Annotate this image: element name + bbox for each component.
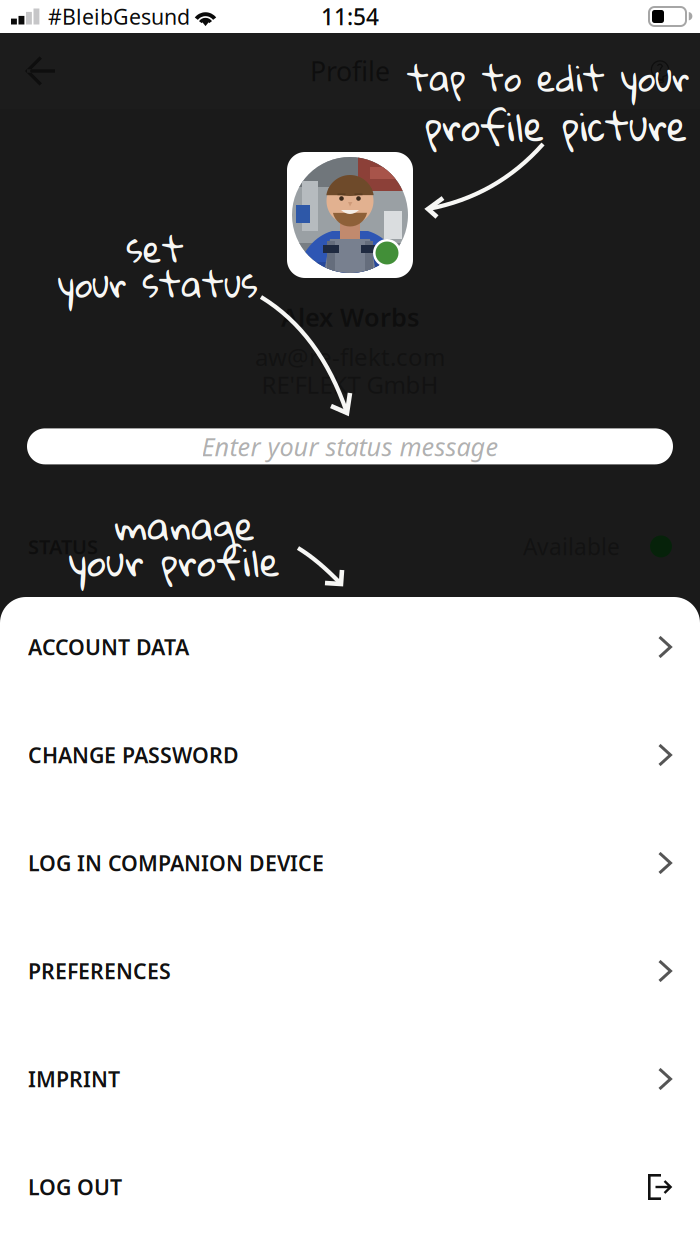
staticText: tap to edit your <box>407 43 689 112</box>
staticText: aw@re-flekt.com <box>255 341 445 372</box>
button[interactable]: CHANGE PASSWORD <box>0 701 700 809</box>
button[interactable]: ACCOUNT DATA <box>0 593 700 701</box>
staticText: CHANGE PASSWORD <box>28 741 239 769</box>
staticText: ACCOUNT DATA <box>28 633 189 661</box>
staticText: RE'FLEKT GmbH <box>261 368 438 400</box>
button[interactable]: Help <box>629 33 691 109</box>
button[interactable]: PREFERENCES <box>0 917 700 1025</box>
staticText: STATUS <box>28 533 98 560</box>
staticText: LOG OUT <box>28 1173 122 1201</box>
staticText: #BleibGesund <box>48 2 190 31</box>
staticText: LOG IN COMPANION DEVICE <box>28 849 324 877</box>
button[interactable]: Enter your status message <box>27 428 673 464</box>
staticText: 11:54 <box>321 1 379 31</box>
staticText: PREFERENCES <box>28 957 171 985</box>
staticText: set <box>126 214 184 283</box>
button[interactable]: LOG IN COMPANION DEVICE <box>0 809 700 917</box>
button[interactable]: LOG OUT <box>0 1133 700 1241</box>
staticText: Enter your status message <box>201 430 498 463</box>
staticText: IMPRINT <box>28 1065 120 1093</box>
button[interactable]: Edit profile picture <box>287 152 413 278</box>
staticText: Profile <box>310 53 390 89</box>
staticText: your profile <box>69 524 280 598</box>
button[interactable]: IMPRINT <box>0 1025 700 1133</box>
staticText: your status <box>58 249 258 318</box>
staticText: Alex Worbs <box>281 300 419 334</box>
staticText: profile picture <box>425 88 688 163</box>
staticText: manage <box>115 488 255 562</box>
